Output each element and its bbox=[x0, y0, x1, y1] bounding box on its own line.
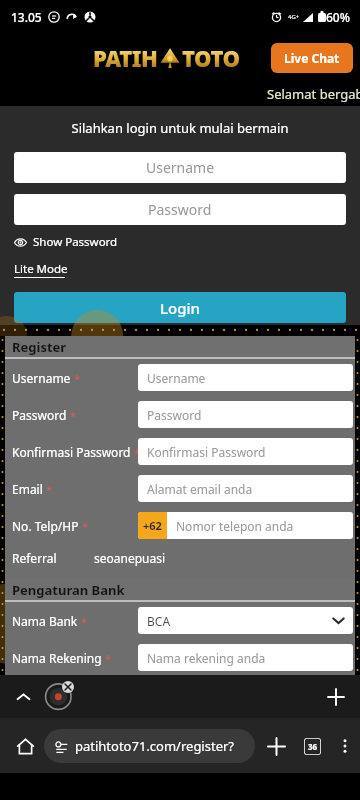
staticText: Lite Mode bbox=[14, 261, 68, 277]
staticText: 13.05 bbox=[11, 9, 42, 25]
staticText: Username bbox=[147, 370, 206, 386]
staticText: No. Telp/HP bbox=[12, 518, 79, 534]
button[interactable]: Live Chat bbox=[271, 43, 353, 73]
button[interactable]: Username bbox=[138, 364, 353, 391]
button[interactable]: Konfirmasi Password bbox=[138, 438, 353, 465]
staticText: * bbox=[82, 519, 89, 534]
button[interactable]: Login bbox=[14, 292, 346, 323]
staticText: seoanepuasi bbox=[94, 550, 166, 566]
button[interactable]: +62 bbox=[138, 512, 353, 539]
staticText: Nama rekening anda bbox=[147, 650, 266, 666]
staticText: Konfirmasi Password bbox=[12, 444, 131, 460]
button[interactable]: More options bbox=[330, 730, 360, 762]
staticText: Konfirmasi Password bbox=[147, 444, 266, 460]
staticText: Pengaturan Bank bbox=[12, 581, 125, 599]
staticText: patihtoto71.com/register?referral_ bbox=[75, 737, 255, 755]
button[interactable]: Nomor rekening anda bbox=[138, 681, 353, 708]
button[interactable]: BCA bbox=[138, 607, 353, 634]
staticText: TOTO bbox=[182, 43, 240, 73]
staticText: Live Chat bbox=[284, 50, 340, 66]
staticText: Alamat email anda bbox=[147, 481, 253, 497]
staticText: PATIH bbox=[93, 43, 158, 73]
button[interactable]: Lite Mode bbox=[14, 261, 68, 278]
staticText: * bbox=[81, 614, 88, 629]
staticText: Show Password bbox=[33, 234, 118, 250]
staticText: * bbox=[70, 408, 77, 423]
staticText: Username bbox=[12, 370, 71, 386]
staticText: BCA bbox=[147, 613, 171, 629]
staticText: Silahkan login untuk mulai bermain bbox=[0, 119, 360, 137]
staticText: Password bbox=[12, 407, 67, 423]
staticText: Nomor Rekening bbox=[12, 687, 108, 703]
button[interactable]: Open tabs: 36 bbox=[295, 729, 329, 763]
staticText: Email bbox=[12, 481, 43, 497]
staticText: * bbox=[105, 651, 112, 666]
staticText: Nama Bank bbox=[12, 613, 78, 629]
staticText: Password bbox=[148, 200, 212, 219]
staticText: 60% bbox=[326, 9, 350, 25]
button[interactable]: New tab bbox=[320, 681, 352, 713]
staticText: +62 bbox=[143, 518, 162, 533]
staticText: Referral bbox=[12, 550, 57, 566]
staticText: Password bbox=[147, 407, 202, 423]
button[interactable]: Password bbox=[14, 194, 346, 225]
button[interactable]: Password bbox=[138, 401, 353, 428]
staticText: 36 bbox=[308, 741, 318, 752]
button[interactable]: Current tab bbox=[45, 681, 74, 710]
button[interactable]: patihtoto71.com/register?referral_ bbox=[44, 729, 255, 763]
staticText: Username bbox=[146, 158, 215, 177]
staticText: Register bbox=[12, 338, 67, 356]
staticText: * bbox=[46, 482, 53, 497]
staticText: Nama Rekening bbox=[12, 650, 102, 666]
button[interactable]: Show Password bbox=[14, 234, 118, 250]
staticText: Login bbox=[160, 298, 200, 318]
button[interactable]: Expand tabs bbox=[8, 682, 38, 712]
staticText: Nomor telepon anda bbox=[176, 518, 294, 534]
button[interactable]: Nama rekening anda bbox=[138, 644, 353, 671]
button[interactable]: New tab bbox=[259, 729, 293, 763]
button[interactable]: Username bbox=[14, 152, 346, 183]
staticText: * bbox=[74, 371, 81, 386]
button[interactable]: Alamat email anda bbox=[138, 475, 353, 502]
button[interactable]: Home bbox=[8, 729, 42, 763]
staticText: Selamat bergabung bbox=[267, 85, 360, 103]
staticText: * bbox=[134, 445, 138, 460]
staticText: 4G+ bbox=[288, 13, 300, 21]
